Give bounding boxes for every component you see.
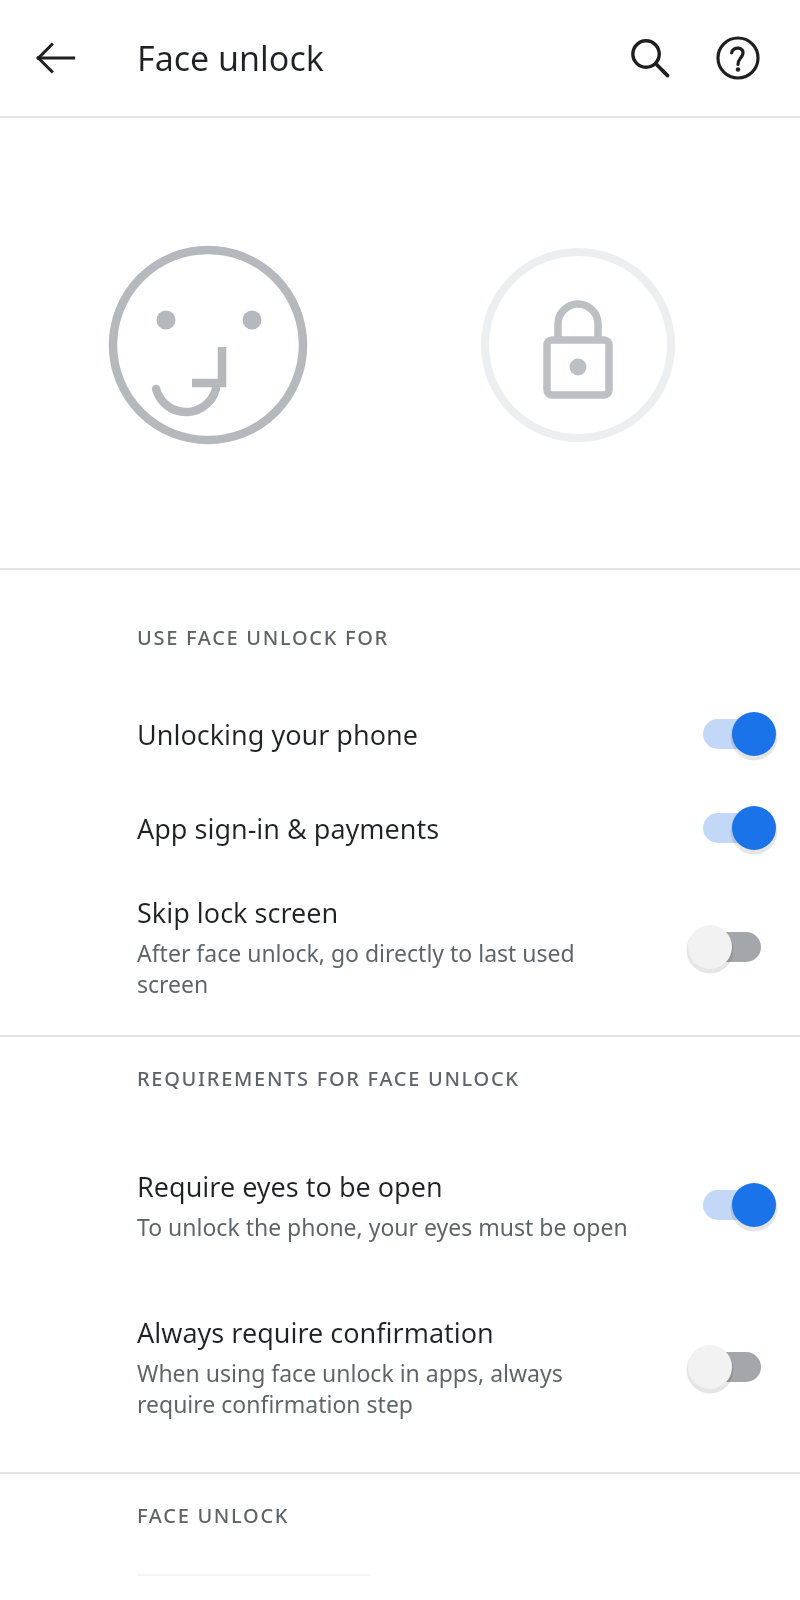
button[interactable]: Search xyxy=(614,22,686,94)
button[interactable]: Skip lock screen xyxy=(0,879,800,1015)
button[interactable]: Always require confirmation xyxy=(0,1298,800,1436)
button[interactable]: Help xyxy=(702,22,774,94)
staticText: App sign-in & payments xyxy=(137,810,440,847)
staticText: After face unlock, go directly to last u… xyxy=(137,937,632,1000)
staticText: When using face unlock in apps, always r… xyxy=(137,1357,632,1420)
staticText: Face unlock xyxy=(137,35,324,81)
button[interactable]: Back xyxy=(20,22,92,94)
button[interactable] xyxy=(686,1336,778,1398)
staticText: Always require confirmation xyxy=(137,1314,494,1351)
staticText: USE FACE UNLOCK FOR xyxy=(137,624,389,651)
button[interactable]: App sign-in & payments xyxy=(0,777,800,879)
staticText: REQUIREMENTS FOR FACE UNLOCK xyxy=(137,1065,520,1092)
staticText: To unlock the phone, your eyes must be o… xyxy=(137,1211,628,1242)
button[interactable]: Unlocking your phone xyxy=(0,691,800,777)
button[interactable] xyxy=(686,1174,778,1236)
button[interactable] xyxy=(686,703,778,765)
staticText: Unlocking your phone xyxy=(137,716,418,753)
button[interactable]: Require eyes to be open xyxy=(0,1136,800,1274)
button[interactable] xyxy=(686,916,778,978)
button[interactable] xyxy=(686,797,778,859)
staticText: FACE UNLOCK xyxy=(137,1502,290,1529)
staticText: Skip lock screen xyxy=(137,894,339,931)
staticText: Require eyes to be open xyxy=(137,1168,443,1205)
